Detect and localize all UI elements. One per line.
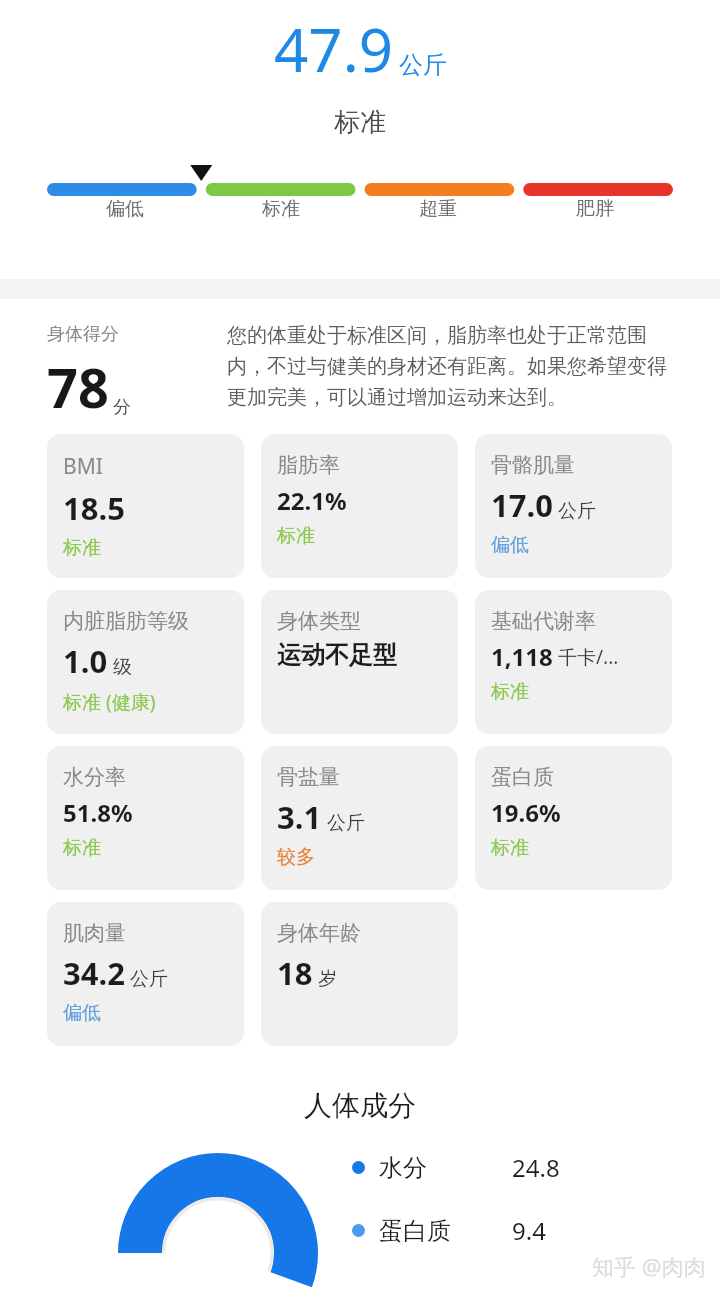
staticText: 标准 [262, 197, 300, 221]
button[interactable]: 蛋白质 [352, 1214, 546, 1247]
staticText: 您的体重处于标准区间，脂肪率也处于正常范围内，不过与健美的身材还有距离。如果您希… [227, 323, 675, 410]
staticText: 19.6% [491, 796, 561, 829]
staticText: 51.8% [63, 796, 133, 829]
staticText: 22.1% [277, 484, 347, 517]
staticText: 身体类型 [277, 608, 361, 634]
staticText: 人体成分 [304, 1088, 416, 1123]
staticText: 18.5 [63, 487, 125, 529]
button[interactable]: 身体年龄 [261, 902, 458, 1046]
staticText: 47.9 [274, 8, 394, 90]
staticText: 岁 [318, 967, 337, 991]
button[interactable]: 水分 [352, 1151, 560, 1184]
staticText: 水分 [379, 1153, 427, 1183]
button[interactable]: 蛋白质 [475, 746, 672, 890]
staticText: 运动不足型 [277, 640, 397, 670]
staticText: 较多 [277, 845, 315, 869]
staticText: 78 [47, 350, 109, 424]
button[interactable]: BMI [47, 434, 244, 578]
staticText: 身体年龄 [277, 920, 361, 946]
staticText: 蛋白质 [379, 1216, 451, 1246]
staticText: 水分率 [63, 764, 126, 790]
staticText: 偏低 [106, 197, 144, 221]
staticText: 基础代谢率 [491, 608, 596, 634]
staticText: 18 [277, 952, 313, 994]
staticText: 级 [113, 655, 132, 679]
button[interactable]: 脂肪率 [261, 434, 458, 578]
staticText: 标准 [491, 836, 529, 860]
staticText: 3.1 [277, 796, 322, 838]
staticText: 偏低 [63, 1001, 101, 1025]
staticText: 公斤 [327, 811, 365, 835]
staticText: 17.0 [491, 484, 553, 526]
staticText: 蛋白质 [491, 764, 554, 790]
staticText: 9.4 [512, 1214, 546, 1247]
staticText: 身体得分 [47, 323, 119, 346]
staticText: 1,118 [491, 640, 553, 673]
button[interactable]: 内脏脂肪等级 [47, 590, 244, 734]
button[interactable]: 骨骼肌量 [475, 434, 672, 578]
staticText: 标准 [277, 524, 315, 548]
staticText: BMI [63, 452, 103, 481]
staticText: 肥胖 [576, 197, 614, 221]
button[interactable]: 水分率 [47, 746, 244, 890]
button[interactable]: 基础代谢率 [475, 590, 672, 734]
staticText: 骨骼肌量 [491, 452, 575, 478]
staticText: 骨盐量 [277, 764, 340, 790]
staticText: 分 [113, 396, 131, 419]
staticText: 肌肉量 [63, 920, 126, 946]
button[interactable]: 肌肉量 [47, 902, 244, 1046]
staticText: 24.8 [512, 1151, 560, 1184]
staticText: 34.2 [63, 952, 125, 994]
staticText: 知乎 @肉肉 [592, 1251, 706, 1281]
staticText: 千卡/... [558, 644, 619, 670]
staticText: 内脏脂肪等级 [63, 608, 189, 634]
staticText: 标准 (健康) [63, 689, 156, 715]
staticText: 公斤 [130, 967, 168, 991]
staticText: 标准 [334, 106, 386, 139]
staticText: 公斤 [558, 499, 596, 523]
staticText: 标准 [63, 836, 101, 860]
staticText: 公斤 [399, 50, 447, 80]
button[interactable]: 骨盐量 [261, 746, 458, 890]
staticText: 脂肪率 [277, 452, 340, 478]
button[interactable]: 身体类型 [261, 590, 458, 734]
staticText: 标准 [63, 536, 101, 560]
staticText: 超重 [419, 197, 457, 221]
staticText: 偏低 [491, 533, 529, 557]
staticText: 标准 [491, 680, 529, 704]
staticText: 1.0 [63, 640, 108, 682]
